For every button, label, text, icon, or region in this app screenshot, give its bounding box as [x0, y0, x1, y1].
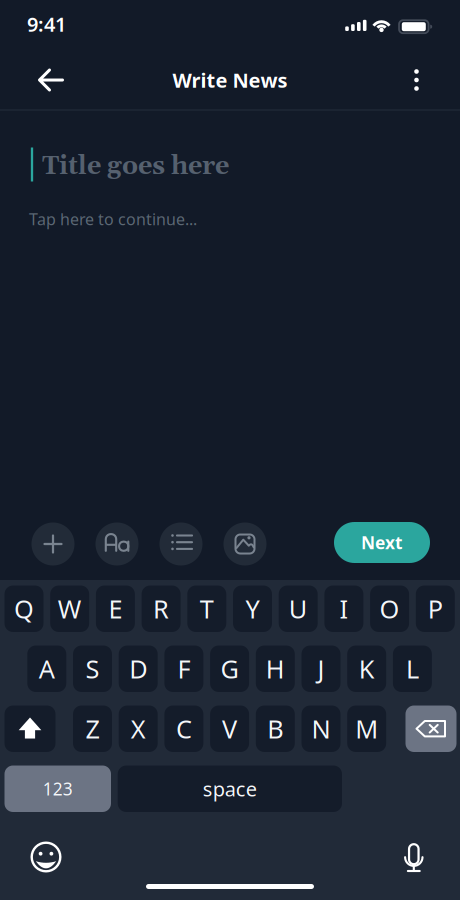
button[interactable]: A [27, 645, 66, 692]
staticText: H [266, 652, 285, 685]
staticText: W [58, 592, 82, 625]
staticText: Y [245, 592, 259, 625]
button[interactable]: T [187, 585, 226, 632]
button[interactable]: Insert image [223, 522, 266, 565]
button[interactable]: G [210, 645, 249, 692]
staticText: B [267, 712, 283, 745]
button[interactable]: V [210, 705, 249, 752]
staticText: F [177, 652, 190, 685]
button[interactable]: Q [4, 585, 43, 632]
button[interactable]: P [416, 585, 455, 632]
staticText: Z [85, 712, 99, 745]
button[interactable]: O [370, 585, 409, 632]
button[interactable]: H [256, 645, 295, 692]
button[interactable]: More options [394, 58, 438, 102]
staticText: C [176, 712, 192, 745]
button[interactable]: U [279, 585, 318, 632]
staticText: Next [361, 531, 403, 554]
staticText: D [129, 652, 147, 685]
staticText: 123 [43, 777, 73, 800]
button[interactable]: R [142, 585, 181, 632]
staticText: N [311, 712, 330, 745]
staticText: Title goes here [42, 150, 229, 183]
button[interactable]: L [393, 645, 432, 692]
staticText: E [108, 592, 122, 625]
staticText: Q [14, 592, 34, 625]
button[interactable]: K [347, 645, 386, 692]
staticText: 9:41 [27, 11, 66, 37]
staticText: I [339, 592, 348, 625]
button[interactable]: Delete [405, 705, 456, 752]
staticText: Write News [172, 67, 287, 93]
staticText: G [221, 652, 239, 685]
staticText: V [222, 712, 237, 745]
button[interactable]: Add [31, 522, 74, 565]
button[interactable]: F [164, 645, 203, 692]
staticText: U [289, 592, 308, 625]
button[interactable]: I [324, 585, 363, 632]
staticText: X [131, 712, 146, 745]
staticText: P [428, 592, 443, 625]
staticText: K [359, 652, 375, 685]
button[interactable]: M [347, 705, 386, 752]
button[interactable]: List [159, 522, 202, 565]
staticText: T [200, 592, 214, 625]
button[interactable]: J [301, 645, 340, 692]
staticText: A [39, 652, 55, 685]
staticText: M [355, 712, 378, 745]
staticText: R [153, 592, 169, 625]
button[interactable]: 123 [4, 765, 111, 812]
staticText: Tap here to continue... [29, 208, 197, 230]
button[interactable]: B [256, 705, 295, 752]
staticText: L [406, 652, 419, 685]
button[interactable]: N [301, 705, 340, 752]
button[interactable]: Z [73, 705, 112, 752]
button[interactable]: S [73, 645, 112, 692]
staticText: O [380, 592, 400, 625]
button[interactable]: space [118, 765, 342, 812]
button[interactable]: Dictate [392, 834, 436, 878]
button[interactable]: Shift [4, 705, 55, 752]
button[interactable]: Text format [95, 522, 138, 565]
button[interactable]: Next [334, 522, 430, 563]
button[interactable]: Emoji [24, 835, 68, 879]
button[interactable]: W [50, 585, 89, 632]
staticText: space [203, 775, 257, 802]
staticText: J [317, 652, 324, 685]
button[interactable]: Y [233, 585, 272, 632]
button[interactable]: Back [28, 58, 72, 102]
button[interactable]: X [119, 705, 158, 752]
staticText: S [85, 652, 99, 685]
button[interactable]: C [164, 705, 203, 752]
button[interactable]: E [96, 585, 135, 632]
button[interactable]: D [119, 645, 158, 692]
